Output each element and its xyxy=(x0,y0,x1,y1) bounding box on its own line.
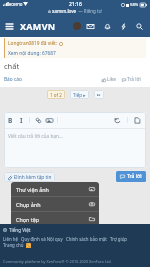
staticText: Tiếng Việt xyxy=(9,227,31,233)
button[interactable]: 1 of 2 xyxy=(47,90,65,99)
staticText: Tiếp ▸ xyxy=(73,92,86,98)
button[interactable]: Alerts xyxy=(100,15,114,37)
button[interactable]: Trả lời xyxy=(122,76,141,83)
button[interactable]: Source xyxy=(134,117,141,124)
staticText: Xem nội dung: 67687 xyxy=(8,50,56,57)
staticText: decemo xyxy=(6,1,23,7)
button[interactable]: Liên hệ xyxy=(3,236,18,242)
button[interactable]: B xyxy=(6,113,15,127)
staticText: 58% xyxy=(130,2,139,8)
staticText: Chụp ảnh xyxy=(16,201,41,208)
button[interactable]: Link xyxy=(35,117,42,124)
button[interactable]: Quy định và Nội quy xyxy=(21,236,63,242)
staticText: B xyxy=(8,116,13,125)
staticText: Like xyxy=(107,76,117,83)
staticText: Đính kèm tập tin xyxy=(14,174,52,181)
staticText: Longtran0819 đã viết: xyxy=(8,40,58,47)
staticText: chất xyxy=(4,61,20,71)
staticText: Trả lời xyxy=(127,173,142,180)
button[interactable]: Last page xyxy=(94,90,104,99)
button[interactable]: Account xyxy=(70,15,84,37)
button[interactable]: RSS xyxy=(26,243,31,248)
staticText: Thư viện ảnh xyxy=(16,186,49,193)
button[interactable]: Search xyxy=(132,15,146,37)
button[interactable]: Trợ giúp xyxy=(110,236,128,242)
button[interactable]: Thư viện ảnh xyxy=(11,182,99,196)
staticText: Chọn tệp xyxy=(16,216,40,223)
button[interactable]: Trả lời xyxy=(116,171,146,182)
button[interactable]: Tiếp ▸ xyxy=(70,90,89,99)
staticText: 1 of 2 xyxy=(50,92,62,98)
staticText: I xyxy=(20,116,23,125)
button[interactable]: Like xyxy=(102,76,117,83)
button[interactable]: Menu xyxy=(0,15,19,37)
button[interactable]: Báo cáo xyxy=(4,76,22,83)
staticText: XAMVN xyxy=(20,20,56,32)
button[interactable]: XAMVN xyxy=(20,20,56,32)
button[interactable]: Chọn tệp xyxy=(11,212,99,226)
button[interactable]: Viết câu trả lời của bạn... xyxy=(4,129,146,168)
staticText: Trả lời xyxy=(127,76,141,83)
button[interactable]: Chính sách bảo mật xyxy=(66,236,107,242)
button[interactable]: Đính kèm tập tin xyxy=(4,172,55,182)
staticText: 21:16 xyxy=(69,1,82,8)
staticText: Viết câu trả lời của bạn... xyxy=(8,133,63,140)
staticText: xamvn.love xyxy=(52,8,77,14)
button[interactable]: Quick actions xyxy=(116,15,130,37)
button[interactable]: Tiếng Việt xyxy=(3,226,31,233)
button[interactable]: Undo xyxy=(114,117,121,124)
button[interactable]: Chụp ảnh xyxy=(11,197,99,211)
button[interactable]: Image xyxy=(46,117,53,124)
button[interactable]: Inbox xyxy=(83,15,97,37)
button[interactable]: Trang chủ xyxy=(3,242,24,248)
staticText: — Riêng tư xyxy=(77,8,102,14)
button[interactable]: I xyxy=(17,113,26,127)
staticText: ▸▸ xyxy=(97,93,101,97)
staticText: Community platform by XenForo® © 2010-20… xyxy=(3,259,112,264)
